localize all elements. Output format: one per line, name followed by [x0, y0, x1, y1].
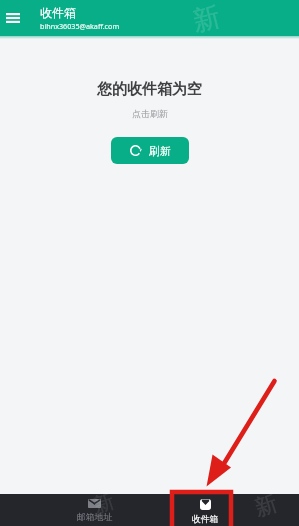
- button[interactable]: 收件箱: [150, 494, 261, 526]
- staticText: bihnx36035@akaff.com: [40, 21, 120, 31]
- button[interactable]: 刷新: [111, 137, 189, 164]
- staticText: 新: [251, 489, 281, 523]
- staticText: 收件箱: [192, 514, 219, 525]
- staticText: 点击刷新: [132, 108, 168, 119]
- staticText: 刷新: [149, 144, 171, 158]
- staticText: 收件箱: [40, 5, 76, 20]
- button[interactable]: 邮箱地址: [39, 494, 150, 526]
- staticText: 新: [91, 488, 117, 518]
- staticText: 新: [189, 0, 224, 39]
- button[interactable]: Menu: [0, 0, 26, 36]
- staticText: 邮箱地址: [77, 512, 113, 523]
- staticText: 您的收件箱为空: [97, 80, 202, 99]
